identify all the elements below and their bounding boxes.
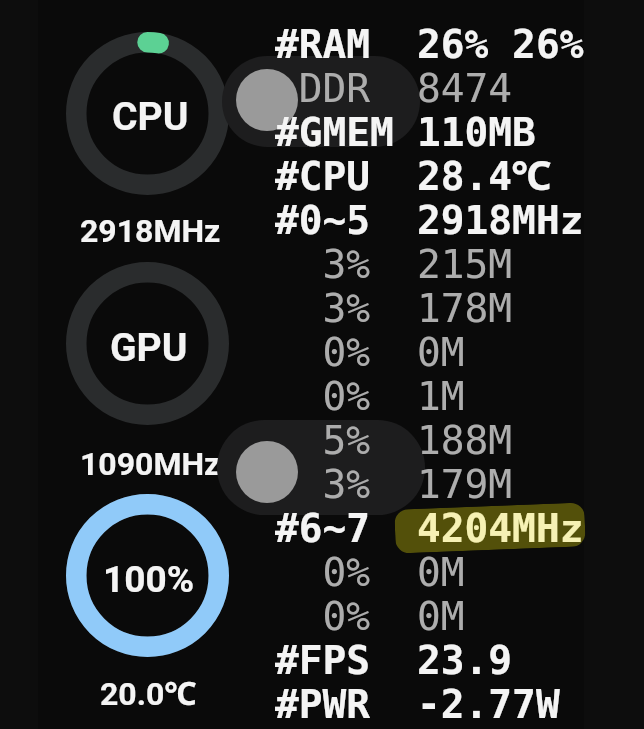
button[interactable]: 0%	[275, 593, 589, 637]
staticText: 0%	[275, 373, 371, 417]
staticText: 2918MHz	[80, 212, 221, 250]
staticText: 178M	[417, 285, 513, 329]
staticText: 20.0℃	[100, 671, 197, 715]
staticText: #PWR	[275, 681, 371, 725]
button[interactable]: DDR	[275, 65, 589, 109]
staticText: 23.9	[417, 637, 513, 681]
staticText: 3%	[275, 285, 371, 329]
staticText: #RAM	[275, 21, 371, 65]
staticText: #CPU	[275, 153, 371, 197]
button[interactable]: #CPU	[275, 153, 589, 197]
staticText: 100%	[103, 558, 195, 601]
button[interactable]: Resize overlay	[236, 441, 298, 503]
staticText: 0M	[417, 593, 465, 637]
staticText: 1090MHz	[80, 445, 221, 483]
button[interactable]: #6~7	[275, 505, 589, 549]
staticText: 1M	[417, 373, 465, 417]
staticText: CPU	[112, 94, 189, 140]
button[interactable]: 3%	[275, 241, 589, 285]
staticText: ℃	[511, 147, 552, 191]
staticText: 0%	[275, 593, 371, 637]
button[interactable]: #FPS	[275, 637, 589, 681]
staticText: 5%	[275, 417, 371, 461]
staticText: 8474	[417, 65, 513, 109]
staticText: 0%	[275, 549, 371, 593]
staticText: GPU	[110, 325, 188, 371]
button[interactable]: #RAM	[275, 21, 589, 65]
staticText: #GMEM	[275, 109, 394, 153]
staticText: 110MB	[417, 109, 536, 153]
button[interactable]: Move overlay	[236, 69, 298, 131]
staticText: #6~7	[275, 505, 371, 549]
staticText: #0~5	[275, 197, 371, 241]
staticText: 3%	[275, 461, 371, 505]
staticText: 0%	[275, 329, 371, 373]
staticText: #FPS	[275, 637, 371, 681]
button[interactable]: 3%	[275, 461, 589, 505]
button[interactable]: 3%	[275, 285, 589, 329]
button[interactable]: 0%	[275, 549, 589, 593]
button[interactable]: 5%	[275, 417, 589, 461]
button[interactable]: #PWR	[275, 681, 589, 725]
staticText: 3%	[275, 241, 371, 285]
staticText: 0M	[417, 549, 465, 593]
staticText: DDR	[275, 65, 371, 109]
staticText: 28.4	[417, 153, 513, 197]
staticText: 26% 26%	[417, 21, 584, 65]
staticText: -2.77W	[417, 681, 560, 725]
button[interactable]: #0~5	[275, 197, 589, 241]
staticText: 188M	[417, 417, 513, 461]
staticText: 2918MHz	[417, 197, 584, 241]
staticText: 215M	[417, 241, 513, 285]
button[interactable]: 0%	[275, 373, 589, 417]
button[interactable]: 0%	[275, 329, 589, 373]
staticText: 179M	[417, 461, 513, 505]
button[interactable]: #GMEM	[275, 109, 589, 153]
staticText: 0M	[417, 329, 465, 373]
staticText: 4204MHz	[417, 505, 584, 549]
